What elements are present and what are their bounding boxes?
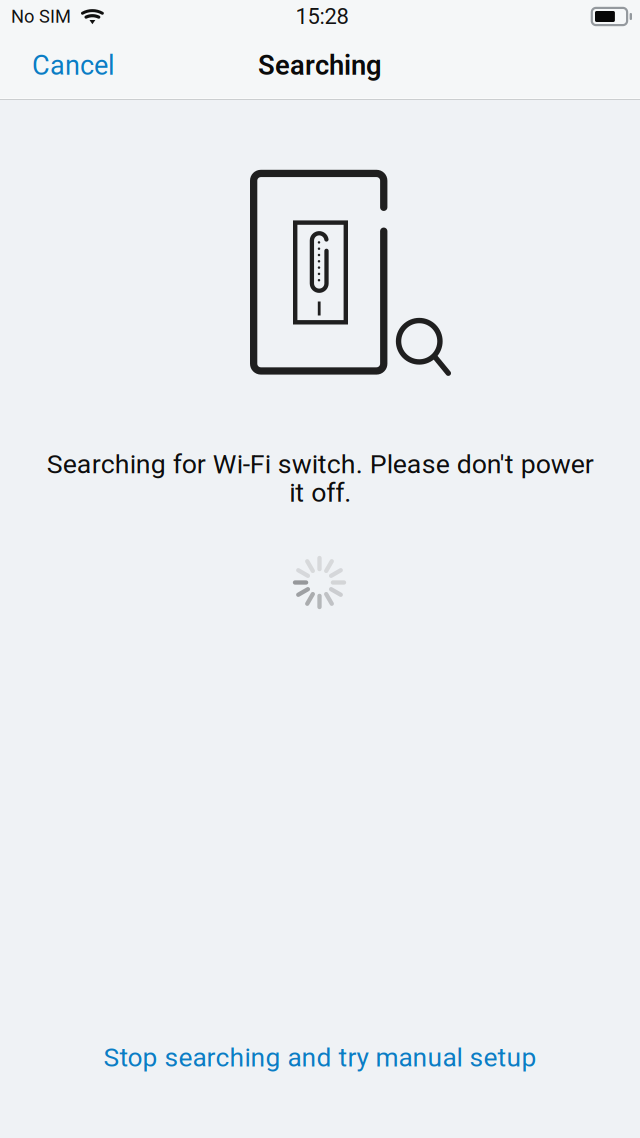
button[interactable]: Cancel (16, 38, 131, 93)
button[interactable]: Stop searching and try manual setup (83, 1029, 556, 1086)
staticText: Stop searching and try manual setup (103, 1042, 536, 1073)
staticText: Cancel (32, 50, 115, 81)
staticText: Searching for Wi-Fi switch. Please don't… (46, 449, 593, 508)
staticText: Searching (258, 50, 382, 81)
staticText: No SIM (11, 6, 71, 27)
staticText: 15:28 (295, 4, 348, 29)
